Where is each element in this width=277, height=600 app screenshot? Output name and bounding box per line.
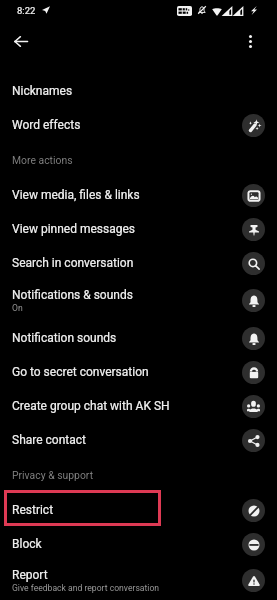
button[interactable]: Share contact (0, 423, 277, 457)
button[interactable]: Create group chat with AK SH (0, 389, 277, 423)
staticText: 8:22 (17, 5, 36, 16)
staticText: More actions (12, 154, 73, 166)
staticText: Give feedback and report conversation (12, 583, 160, 593)
staticText: Create group chat with AK SH (12, 399, 170, 413)
staticText: Notification sounds (12, 331, 117, 345)
button[interactable]: More options (238, 29, 262, 53)
button[interactable]: Word effects (0, 108, 277, 142)
button[interactable]: Notifications & sounds (0, 280, 277, 321)
button[interactable]: Block (0, 527, 277, 561)
staticText: Restrict (12, 503, 54, 517)
staticText: Share contact (12, 433, 86, 447)
button[interactable]: Report (0, 561, 277, 600)
button[interactable]: Search in conversation (0, 246, 277, 280)
staticText: View pinned messages (12, 222, 136, 236)
button[interactable]: Go to secret conversation (0, 355, 277, 389)
button[interactable]: Nicknames (0, 74, 277, 108)
button[interactable]: View media, files & links (0, 178, 277, 212)
staticText: Report (12, 568, 48, 582)
staticText: Go to secret conversation (12, 365, 149, 379)
button[interactable]: View pinned messages (0, 212, 277, 246)
staticText: Notifications & sounds (12, 288, 133, 302)
staticText: Search in conversation (12, 256, 134, 270)
button[interactable]: Restrict (0, 493, 277, 527)
staticText: Block (12, 537, 42, 551)
staticText: Privacy & support (12, 469, 94, 481)
staticText: Word effects (12, 118, 81, 132)
staticText: View media, files & links (12, 188, 140, 202)
staticText: Nicknames (12, 84, 73, 98)
button[interactable]: Back (7, 27, 35, 55)
button[interactable]: Notification sounds (0, 321, 277, 355)
staticText: On (12, 303, 23, 313)
